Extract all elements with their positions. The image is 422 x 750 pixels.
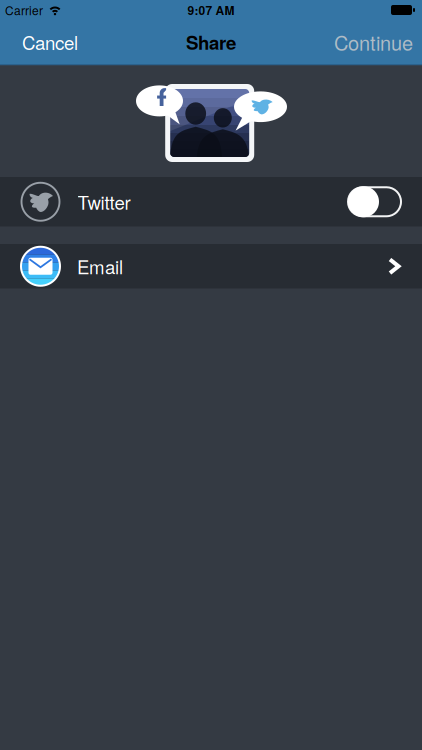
- button[interactable]: Continue: [334, 28, 413, 56]
- staticText: Carrier: [5, 2, 43, 18]
- staticText: Email: [77, 253, 123, 279]
- button[interactable]: Cancel: [22, 29, 78, 55]
- button[interactable]: Twitter switch: [347, 186, 402, 217]
- button[interactable]: Email: [0, 244, 422, 288]
- staticText: Twitter: [77, 189, 130, 215]
- staticText: 9:07 AM: [187, 2, 234, 18]
- staticText: Share: [186, 29, 236, 55]
- staticText: Continue: [334, 28, 413, 56]
- staticText: Cancel: [22, 29, 78, 55]
